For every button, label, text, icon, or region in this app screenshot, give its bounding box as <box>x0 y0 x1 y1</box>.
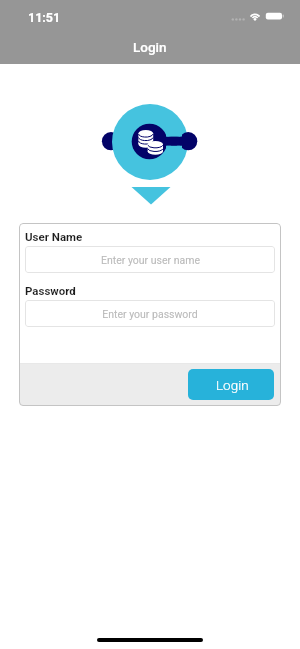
button[interactable]: Login <box>188 369 274 400</box>
staticText: User Name <box>25 230 83 243</box>
staticText: Login <box>216 377 249 393</box>
button[interactable]: Enter your user name <box>25 246 275 273</box>
staticText: Password <box>25 284 76 297</box>
staticText: Enter your user name <box>101 254 200 266</box>
other: Status icons <box>228 10 288 22</box>
staticText: Enter your password <box>102 308 198 320</box>
staticText: Login <box>133 39 167 55</box>
button[interactable]: Enter your password <box>25 300 275 327</box>
staticText: 11:51 <box>28 10 61 25</box>
